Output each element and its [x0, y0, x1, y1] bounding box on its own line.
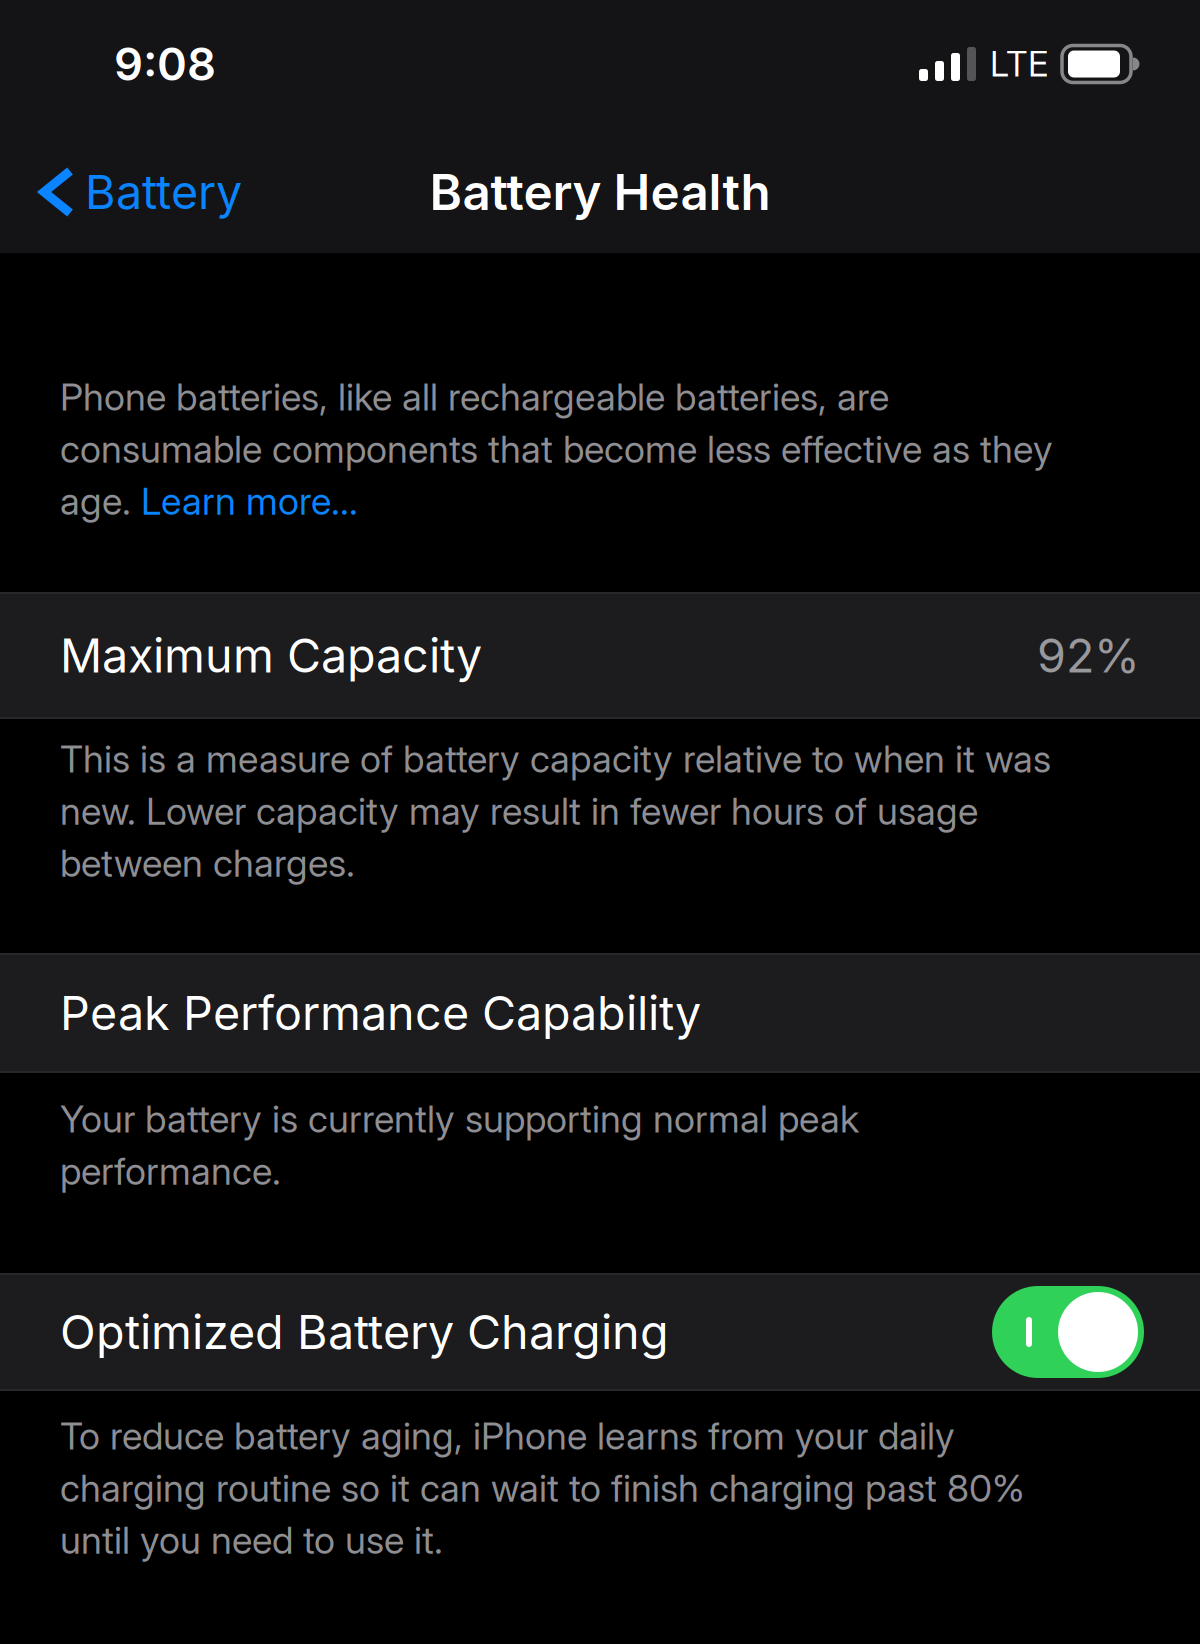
staticText: Battery — [85, 164, 242, 220]
staticText: charging routine so it can wait to finis… — [60, 1466, 1025, 1510]
staticText: until you need to use it. — [60, 1518, 443, 1562]
staticText: To reduce battery aging, iPhone learns f… — [60, 1414, 955, 1458]
staticText: 9:08 — [114, 37, 216, 91]
staticText: between charges. — [60, 841, 355, 885]
staticText: Battery Health — [429, 163, 770, 221]
button[interactable]: Back — [44, 164, 242, 220]
staticText: new. Lower capacity may result in fewer … — [60, 789, 978, 833]
staticText: This is a measure of battery capacity re… — [60, 737, 1051, 781]
staticText: Peak Performance Capability — [60, 985, 701, 1041]
staticText: Phone batteries, like all rechargeable b… — [60, 375, 889, 419]
staticText: Maximum Capacity — [60, 628, 482, 683]
staticText: Your battery is currently supporting nor… — [60, 1097, 859, 1141]
staticText: age. — [60, 479, 141, 523]
staticText: consumable components that become less e… — [60, 427, 1053, 471]
staticText: Learn more... — [141, 479, 358, 523]
button[interactable]: Optimized Battery Charging — [992, 1286, 1144, 1378]
staticText: 92% — [1037, 628, 1140, 683]
button[interactable]: Learn more... — [141, 479, 358, 523]
staticText: Optimized Battery Charging — [60, 1304, 669, 1360]
staticText: LTE — [990, 44, 1048, 84]
staticText: performance. — [60, 1149, 281, 1193]
